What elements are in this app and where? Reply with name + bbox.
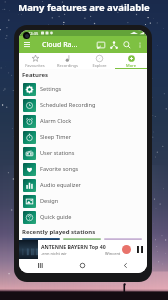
- staticText: ANTENNE BAYERN Top 40: [41, 243, 106, 250]
- button[interactable]: Search: [120, 37, 133, 52]
- button[interactable]: User stations: [19, 145, 147, 161]
- button[interactable]: Audio equalizer: [19, 177, 147, 193]
- button[interactable]: [63, 238, 101, 240]
- staticText: Cloud Ra...: [42, 40, 78, 50]
- button[interactable]: More options: [133, 37, 146, 52]
- staticText: Many features are available: [0, 1, 168, 14]
- staticText: Recently played stations: [22, 228, 147, 236]
- staticText: 12:35: [28, 31, 39, 36]
- button[interactable]: Settings: [19, 81, 147, 97]
- button[interactable]: Share: [107, 37, 120, 52]
- staticText: Sleep Timer: [40, 133, 71, 141]
- button[interactable]: Alarm Clock: [19, 113, 147, 129]
- staticText: Audio equalizer: [40, 181, 81, 189]
- staticText: Quick guide: [40, 213, 72, 221]
- button[interactable]: [104, 238, 142, 240]
- button[interactable]: Back: [104, 259, 147, 273]
- button[interactable]: Recent apps: [19, 259, 61, 273]
- button[interactable]: Favorite songs: [19, 161, 147, 177]
- staticText: More: [126, 63, 136, 68]
- staticText: Favourites: [25, 63, 45, 68]
- button[interactable]: Quick guide: [19, 209, 147, 225]
- staticText: Favorite songs: [40, 165, 79, 173]
- button[interactable]: ANTENNE BAYERN Top 40: [19, 240, 147, 259]
- button[interactable]: Recordings: [51, 53, 83, 69]
- button[interactable]: Scheduled Recording: [19, 97, 147, 113]
- button[interactable]: Pause: [133, 243, 146, 256]
- staticText: Recordings: [57, 63, 78, 68]
- staticText: Features: [22, 71, 147, 79]
- staticText: Alarm Clock: [40, 117, 72, 125]
- staticText: Design: [40, 197, 59, 205]
- button[interactable]: More: [115, 53, 147, 69]
- staticText: -enn nicht wir: [41, 251, 67, 256]
- button[interactable]: Open navigation menu: [21, 37, 32, 52]
- button[interactable]: Home: [61, 259, 104, 273]
- staticText: Wincent: [105, 251, 121, 256]
- button[interactable]: Design: [19, 193, 147, 209]
- staticText: Settings: [40, 85, 62, 93]
- button[interactable]: Favourites: [19, 53, 51, 69]
- button[interactable]: Record: [122, 245, 131, 254]
- button[interactable]: Explore: [83, 53, 115, 69]
- staticText: Explore: [92, 63, 107, 68]
- staticText: User stations: [40, 149, 75, 157]
- button[interactable]: Cast to device: [94, 37, 107, 52]
- button[interactable]: Sleep Timer: [19, 129, 147, 145]
- button[interactable]: [22, 238, 60, 240]
- staticText: Scheduled Recording: [40, 101, 96, 109]
